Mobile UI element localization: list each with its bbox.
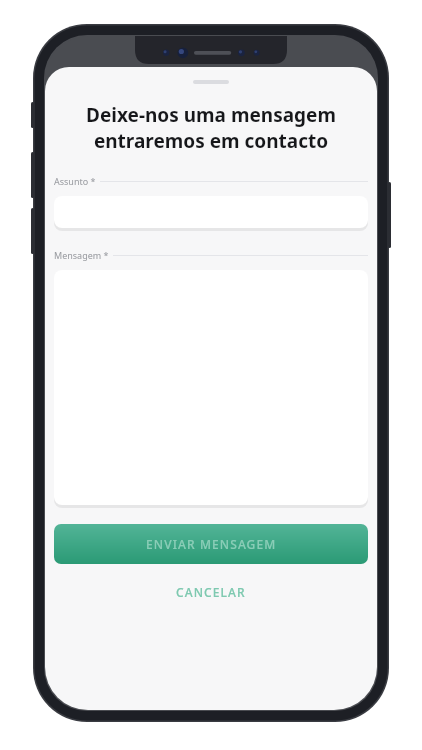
- staticText: Assunto *: [54, 175, 96, 187]
- button[interactable]: CANCELAR: [45, 577, 377, 607]
- staticText: Mensagem *: [54, 249, 109, 261]
- staticText: Deixe-nos uma mensagem entraremos em con…: [53, 102, 369, 153]
- staticText: ENVIAR MENSAGEM: [146, 536, 277, 552]
- staticText: CANCELAR: [176, 584, 246, 600]
- button[interactable]: ENVIAR MENSAGEM: [54, 524, 368, 564]
